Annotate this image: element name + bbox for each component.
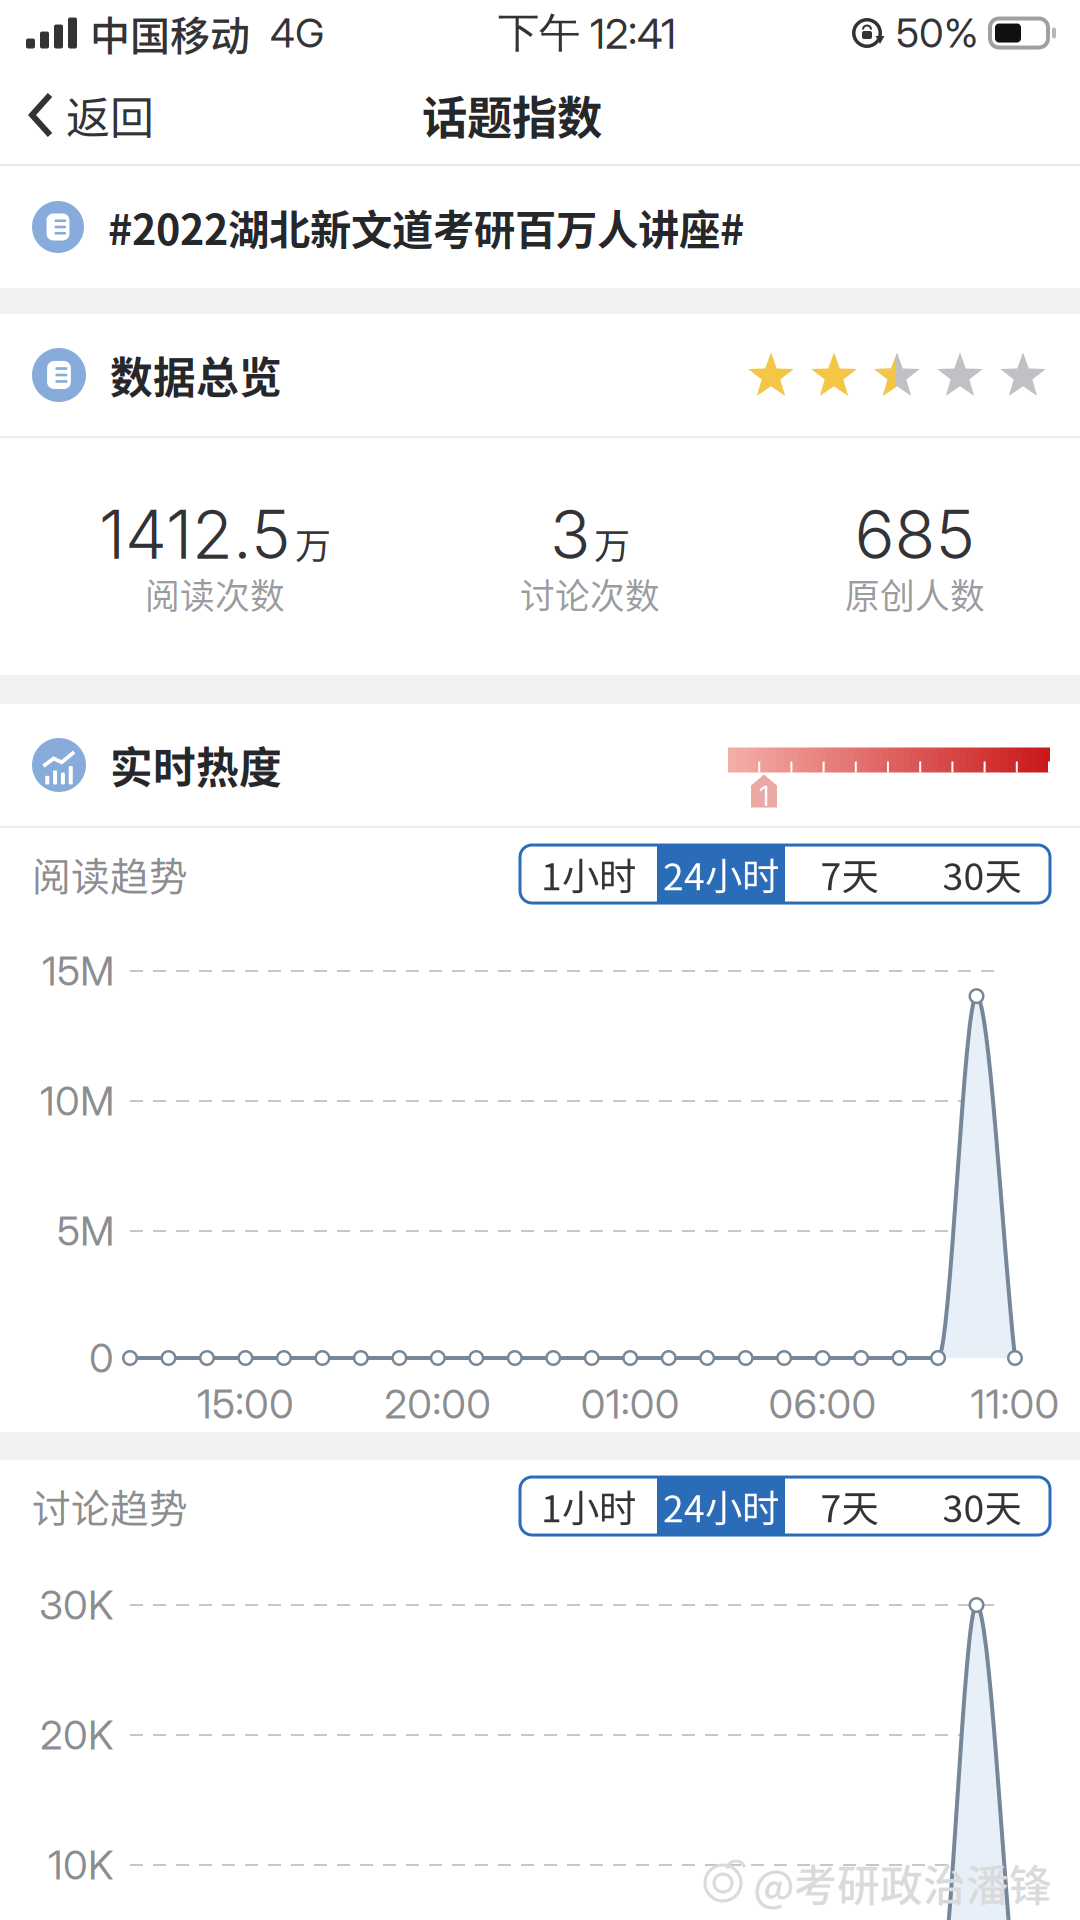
staticText: 50% (896, 9, 978, 57)
staticText: 数据总览 (110, 344, 282, 406)
staticText: 4G (270, 9, 324, 57)
staticText: 0 (89, 1334, 114, 1382)
staticText: 30天 (942, 1479, 1021, 1533)
staticText: 11:00 (970, 1380, 1059, 1428)
button[interactable]: #2022湖北新文道考研百万人讲座# (0, 166, 1080, 288)
staticText: 话题指数 (422, 82, 602, 148)
staticText: 5M (57, 1207, 114, 1255)
staticText: 24小时 (663, 1479, 779, 1533)
button[interactable]: 7天 (785, 845, 914, 903)
staticText: 06:00 (769, 1380, 877, 1428)
staticText: 685 (854, 494, 975, 575)
button[interactable]: 1小时 (520, 1477, 657, 1535)
staticText: 实时热度 (110, 734, 282, 796)
staticText: 1 (759, 780, 769, 812)
staticText: 20:00 (384, 1380, 491, 1428)
button[interactable]: 7天 (785, 1477, 914, 1535)
staticText: 15:00 (197, 1380, 294, 1428)
staticText: 返回 (66, 83, 154, 147)
staticText: 下午 12:41 (498, 7, 676, 59)
staticText: 1小时 (541, 1479, 636, 1533)
button[interactable]: 30天 (914, 1477, 1050, 1535)
staticText: 万 (295, 518, 331, 570)
staticText: 原创人数 (845, 569, 985, 619)
button[interactable]: 1小时 (520, 845, 657, 903)
staticText: 10M (40, 1077, 114, 1125)
staticText: 7天 (820, 1479, 878, 1533)
staticText: 阅读次数 (145, 569, 285, 619)
staticText: @考研政治潘锋 (753, 1852, 1052, 1914)
button[interactable]: 30天 (914, 845, 1050, 903)
staticText: 3 (550, 494, 590, 575)
staticText: 01:00 (581, 1380, 680, 1428)
staticText: 15M (42, 947, 114, 995)
staticText: 7天 (820, 847, 878, 901)
staticText: 30天 (942, 847, 1021, 901)
staticText: 讨论趋势 (32, 1478, 188, 1534)
staticText: 20K (40, 1711, 114, 1759)
staticText: #2022湖北新文道考研百万人讲座# (108, 197, 744, 257)
button[interactable]: 返回 (0, 66, 174, 164)
staticText: 阅读趋势 (32, 846, 188, 902)
staticText: 1412.5 (99, 494, 291, 575)
button[interactable]: 24小时 (657, 845, 785, 903)
button[interactable]: 24小时 (657, 1477, 785, 1535)
staticText: 10K (48, 1841, 114, 1889)
staticText: 万 (594, 518, 630, 570)
staticText: 讨论次数 (520, 569, 660, 619)
staticText: 中国移动 (90, 4, 250, 62)
staticText: 1小时 (541, 847, 636, 901)
staticText: 30K (39, 1581, 114, 1629)
staticText: 24小时 (663, 847, 779, 901)
